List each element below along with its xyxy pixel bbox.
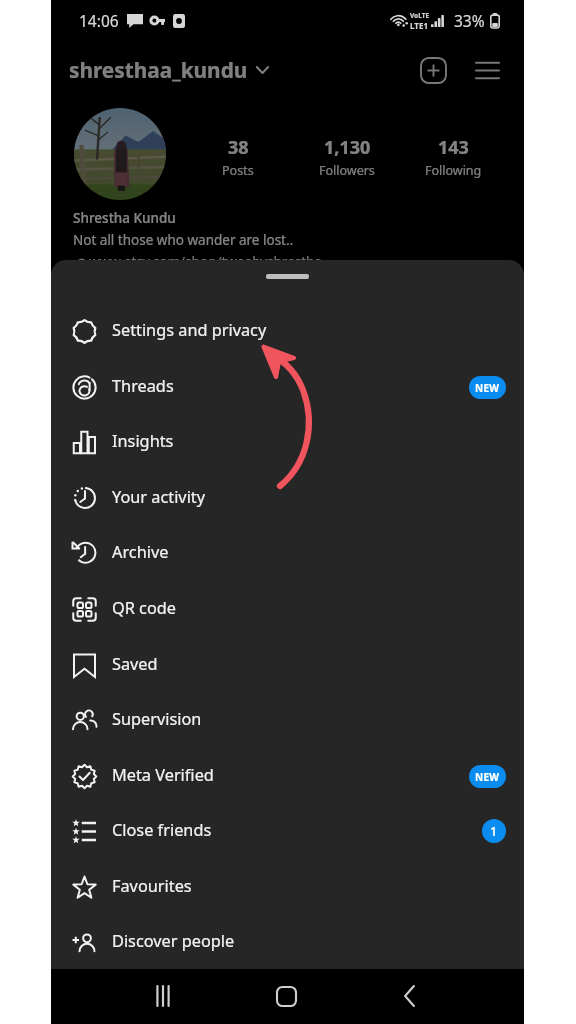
button[interactable]: Menu — [469, 52, 505, 88]
staticText: 14:06 — [79, 10, 119, 31]
button[interactable]: Your activity — [51, 470, 524, 526]
button[interactable]: Meta Verified — [51, 748, 524, 804]
button[interactable]: Saved — [51, 637, 524, 693]
staticText: Your activity — [112, 486, 206, 508]
staticText: Discover people — [112, 930, 235, 952]
staticText: 143 — [438, 135, 469, 160]
staticText: VoLTE — [410, 11, 430, 20]
button[interactable]: Insights — [51, 414, 524, 470]
staticText: Threads — [112, 375, 174, 397]
staticText: LTE1 — [410, 20, 428, 31]
staticText: Followers — [319, 162, 375, 179]
staticText: Not all those who wander are lost.. — [73, 231, 294, 249]
button[interactable]: Settings and privacy — [51, 303, 524, 359]
button[interactable]: Favourites — [51, 859, 524, 915]
button[interactable]: Threads — [51, 359, 524, 415]
staticText: Close friends — [112, 819, 212, 841]
button[interactable]: Recents — [139, 972, 187, 1020]
staticText: 38 — [228, 135, 249, 160]
button[interactable]: Supervision — [51, 692, 524, 748]
staticText: Archive — [112, 541, 169, 563]
button[interactable]: Close friends — [51, 803, 524, 859]
staticText: 1 — [490, 823, 498, 840]
staticText: www.etsy.com/shop/tweebyshrestha — [89, 253, 323, 271]
button[interactable]: shresthaa_kundu — [69, 56, 269, 84]
button[interactable]: QR code — [51, 581, 524, 637]
staticText: Following — [425, 162, 482, 179]
staticText: Insights — [112, 430, 174, 452]
staticText: Posts — [222, 162, 254, 179]
staticText: Supervision — [112, 708, 202, 730]
staticText: Meta Verified — [112, 764, 214, 786]
staticText: QR code — [112, 597, 176, 619]
staticText: Favourites — [112, 875, 192, 897]
staticText: Settings and privacy — [112, 319, 267, 341]
button[interactable]: Discover people — [51, 914, 524, 969]
staticText: shresthaa_kundu — [69, 56, 248, 84]
button[interactable]: Archive — [51, 525, 524, 581]
staticText: 1,130 — [324, 135, 371, 160]
staticText: NEW — [475, 381, 500, 395]
button[interactable]: Back — [385, 972, 433, 1020]
staticText: Shrestha Kundu — [73, 209, 176, 227]
staticText: Saved — [112, 653, 158, 675]
button[interactable]: New post — [415, 52, 451, 88]
staticText: 33% — [454, 10, 485, 31]
staticText: NEW — [475, 770, 500, 784]
button[interactable]: Home — [262, 972, 310, 1020]
